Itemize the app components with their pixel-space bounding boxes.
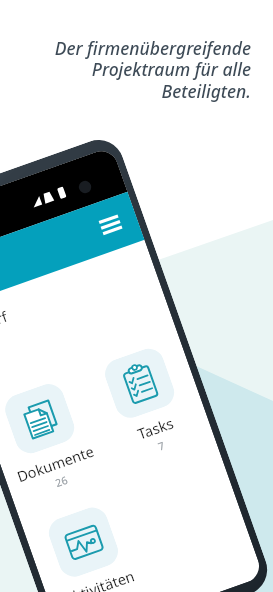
staticText: 7 [156,438,167,454]
button[interactable]: Dokumente [0,372,114,505]
staticText: Tasks [135,412,176,444]
staticText: Dokumente [14,440,97,486]
staticText: 26 [53,472,70,490]
staticText: Düsseldorf [0,307,10,343]
button[interactable]: Aktivitäten [24,496,157,592]
button[interactable]: Tasks [79,337,214,470]
staticText: Aktivitäten [61,565,137,592]
button[interactable]: Menu [0,192,144,310]
staticText: Der firmenübergreifende Projektraum für … [10,36,251,103]
button[interactable]: Menu [99,214,123,235]
